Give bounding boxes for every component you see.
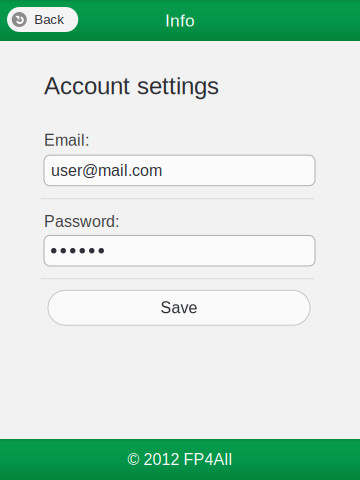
staticText: Password: (44, 213, 119, 230)
staticText: Back (34, 12, 64, 27)
button[interactable]: Save (48, 290, 310, 325)
staticText: Info (165, 11, 195, 30)
staticText: Account settings (44, 73, 219, 99)
staticText: Email: (44, 131, 89, 149)
staticText: Save (160, 299, 197, 317)
staticText: © 2012 FP4All (127, 451, 232, 468)
button[interactable]: Back (7, 7, 78, 32)
staticText: user@mail.com (51, 161, 162, 179)
